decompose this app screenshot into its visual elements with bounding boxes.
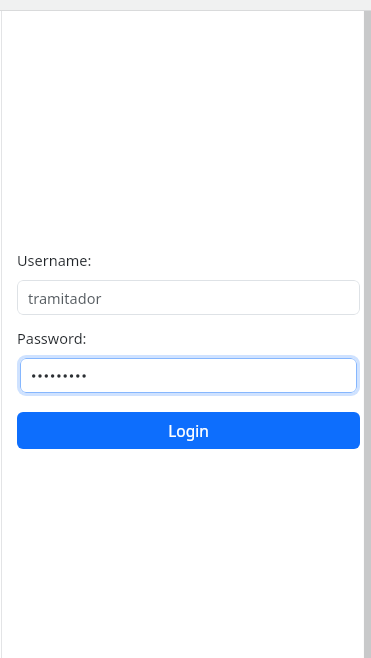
button[interactable]: Login	[17, 412, 360, 449]
staticText: tramitador	[28, 288, 102, 308]
button[interactable]: tramitador	[17, 280, 360, 315]
button[interactable]	[17, 355, 360, 396]
staticText: Username:	[17, 250, 92, 270]
staticText: Login	[168, 420, 209, 441]
staticText: Password:	[17, 328, 87, 348]
